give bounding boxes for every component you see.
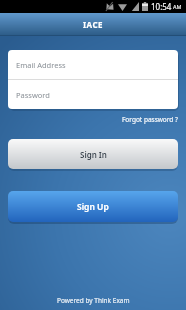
staticText: Powered by Think Exam (57, 296, 130, 305)
staticText: Email Address (16, 60, 66, 70)
button[interactable]: Sign Up (8, 191, 178, 222)
staticText: Sign In (80, 149, 107, 160)
button[interactable]: IACE (0, 13, 186, 36)
staticText: Password (16, 90, 50, 100)
staticText: AM (173, 3, 182, 10)
button[interactable]: Email Address (8, 50, 178, 79)
button[interactable]: Sign In (8, 139, 178, 169)
staticText: IACE (83, 19, 104, 30)
button[interactable]: Forgot password ? (122, 115, 178, 124)
button[interactable]: Password (8, 80, 178, 109)
staticText: 10:54 (151, 1, 172, 12)
staticText: Sign Up (77, 201, 109, 213)
